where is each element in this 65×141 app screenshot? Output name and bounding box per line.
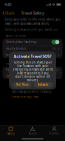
button[interactable]: Not Now xyxy=(12,82,32,88)
button[interactable]: Reykjavik xyxy=(2,67,62,73)
staticText: Not Now xyxy=(16,83,28,86)
staticText: 3 xyxy=(54,53,56,57)
staticText: Profile xyxy=(49,132,59,135)
staticText: Keep your circle in the loop while you xyxy=(4,18,60,21)
button[interactable]: Safety xyxy=(0,126,22,135)
staticText: Hourly check-in xyxy=(5,47,26,50)
button[interactable]: Activate xyxy=(33,82,53,88)
button[interactable]: Back xyxy=(0,9,16,17)
staticText: SAFETY OPTIONS xyxy=(5,34,25,37)
staticText: Safety xyxy=(7,132,14,135)
staticText: Back xyxy=(5,10,14,16)
staticText: Activate xyxy=(38,83,49,86)
staticText: Reykjavik xyxy=(5,68,15,71)
staticText: rates may apply while roaming. xyxy=(11,90,52,93)
staticText: Turning this on shares your live locatio… xyxy=(12,61,52,82)
staticText: travel, with automatic arrival alerts. xyxy=(4,22,49,25)
staticText: Review coverage map xyxy=(11,95,38,98)
staticText: Travel Safety xyxy=(21,10,44,16)
staticText: Activate Travel SOS? xyxy=(13,54,51,59)
staticText: Landed 2h ago xyxy=(38,68,59,71)
staticText: Detect plane landings xyxy=(5,40,36,44)
staticText: Alerts are sent from the nearest xyxy=(11,81,55,84)
button[interactable]: Jet-off contacts xyxy=(2,52,62,58)
staticText: Alerts xyxy=(28,132,36,135)
staticText: Upload itinerary + parking xyxy=(5,74,41,78)
staticText: 9:41 xyxy=(4,2,11,7)
staticText: RECENT ALERTS xyxy=(5,62,23,65)
staticText: On xyxy=(52,47,56,50)
button[interactable]: Hourly check-in xyxy=(2,46,62,52)
button[interactable]: Alerts xyxy=(22,126,43,135)
button[interactable]: Upload itinerary + parking xyxy=(2,73,62,79)
staticText: Nothing is shared until you switch on. xyxy=(4,28,58,31)
button[interactable]: Profile xyxy=(43,126,65,135)
staticText: Jet-off contacts xyxy=(5,53,25,57)
button[interactable]: Detect plane landings xyxy=(2,39,62,46)
staticText: partner centre. Standard message xyxy=(11,85,56,89)
